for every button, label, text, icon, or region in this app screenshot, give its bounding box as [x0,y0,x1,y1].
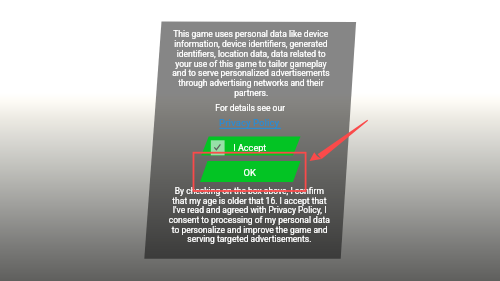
button[interactable]: Privacy Policy [218,116,282,130]
button[interactable]: OK [200,161,301,182]
button[interactable]: I Accept [201,136,301,156]
